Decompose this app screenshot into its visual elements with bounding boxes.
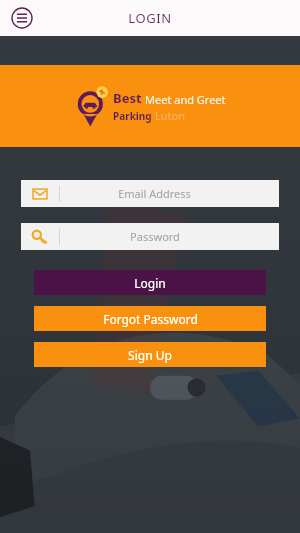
- button[interactable]: Email Address: [21, 180, 279, 207]
- staticText: Email Address: [118, 186, 191, 201]
- staticText: Meet and Greet: [145, 92, 226, 107]
- staticText: Luton: [155, 108, 185, 123]
- button[interactable]: Password: [21, 223, 279, 250]
- button[interactable]: Forgot Password: [34, 306, 266, 331]
- button[interactable]: Sign Up: [34, 342, 266, 367]
- staticText: Sign Up: [128, 347, 172, 363]
- staticText: Best: [113, 89, 142, 107]
- button[interactable]: Open navigation menu: [8, 4, 36, 32]
- button[interactable]: Login: [34, 270, 266, 295]
- staticText: LOGIN: [128, 9, 172, 27]
- staticText: Parking: [113, 109, 152, 123]
- staticText: Password: [130, 229, 180, 244]
- staticText: Forgot Password: [103, 311, 198, 327]
- staticText: Login: [134, 275, 166, 291]
